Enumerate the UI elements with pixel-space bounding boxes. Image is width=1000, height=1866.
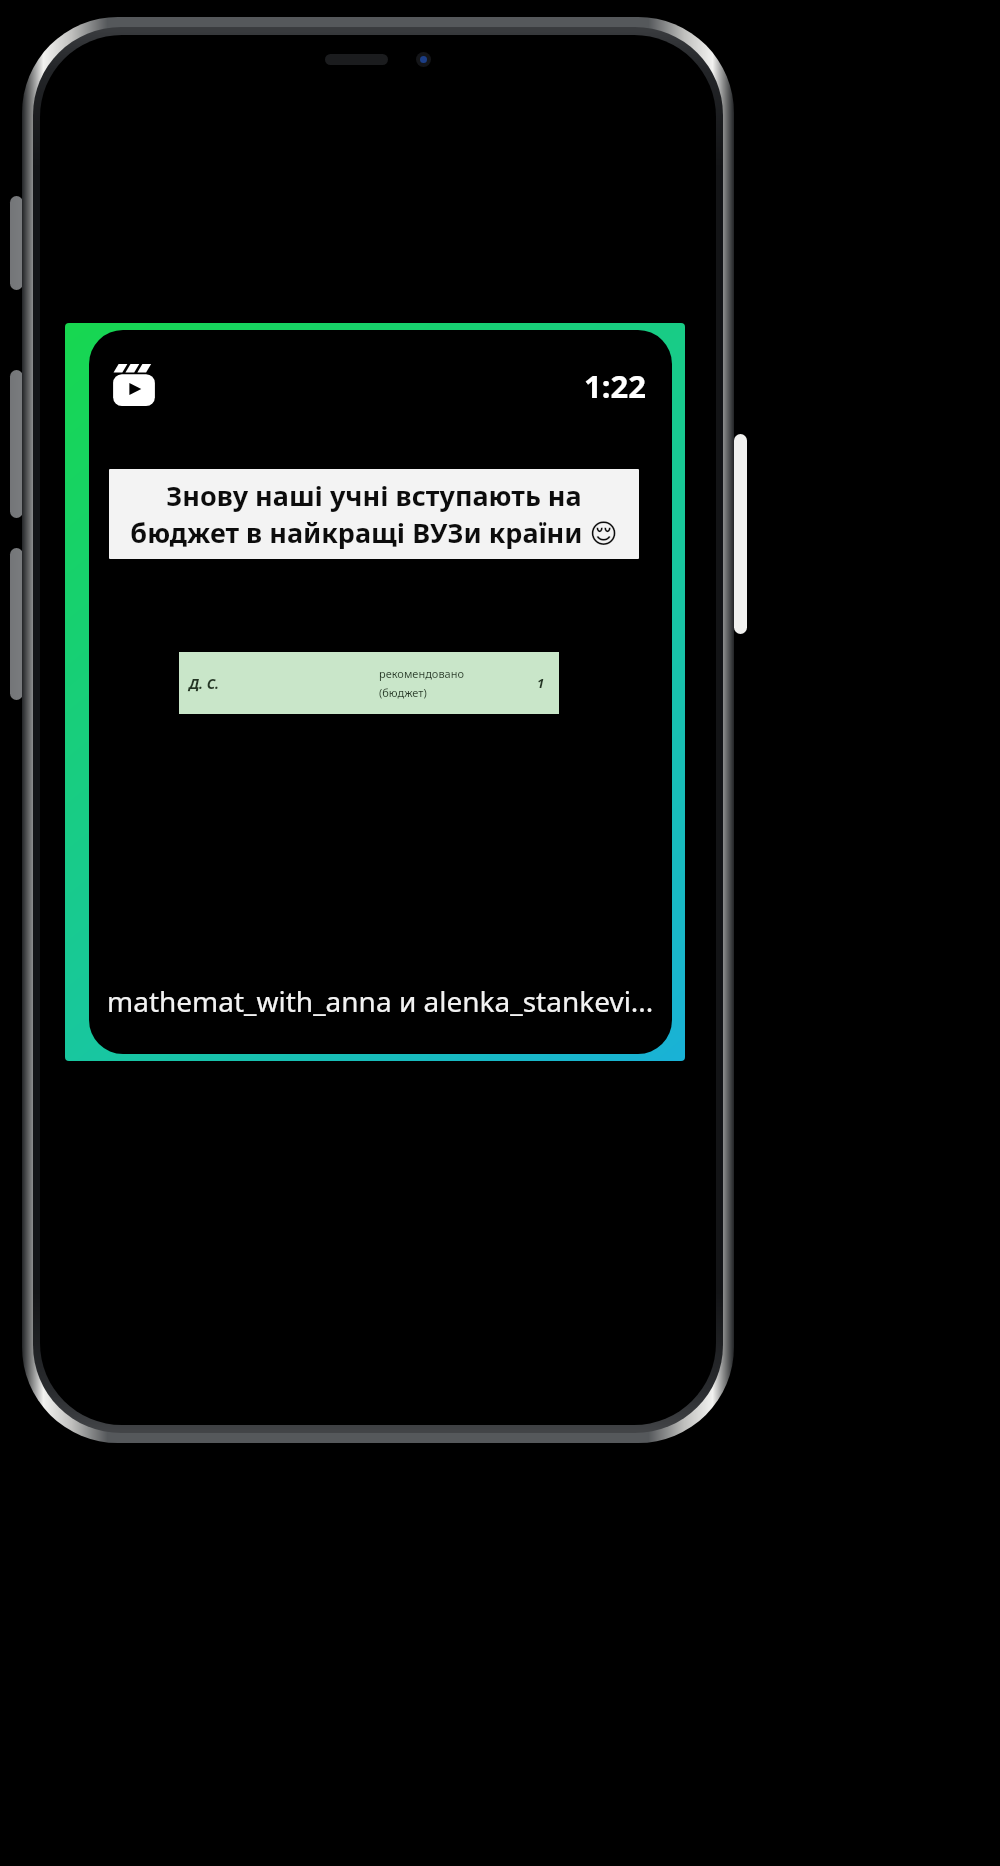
button[interactable]: Reels	[111, 362, 157, 408]
staticText: 1:22	[584, 365, 646, 407]
staticText: (бюджет)	[379, 685, 427, 700]
button[interactable]: mathemat_with_anna и alenka_stankevi...	[107, 982, 654, 1020]
staticText: Знову наші учні вступають на бюджет в на…	[119, 477, 629, 551]
staticText: 1	[537, 674, 545, 692]
staticText: рекомендовано	[379, 666, 464, 681]
staticText: Д. С.	[189, 674, 220, 693]
button[interactable]: Reels	[65, 323, 685, 1061]
